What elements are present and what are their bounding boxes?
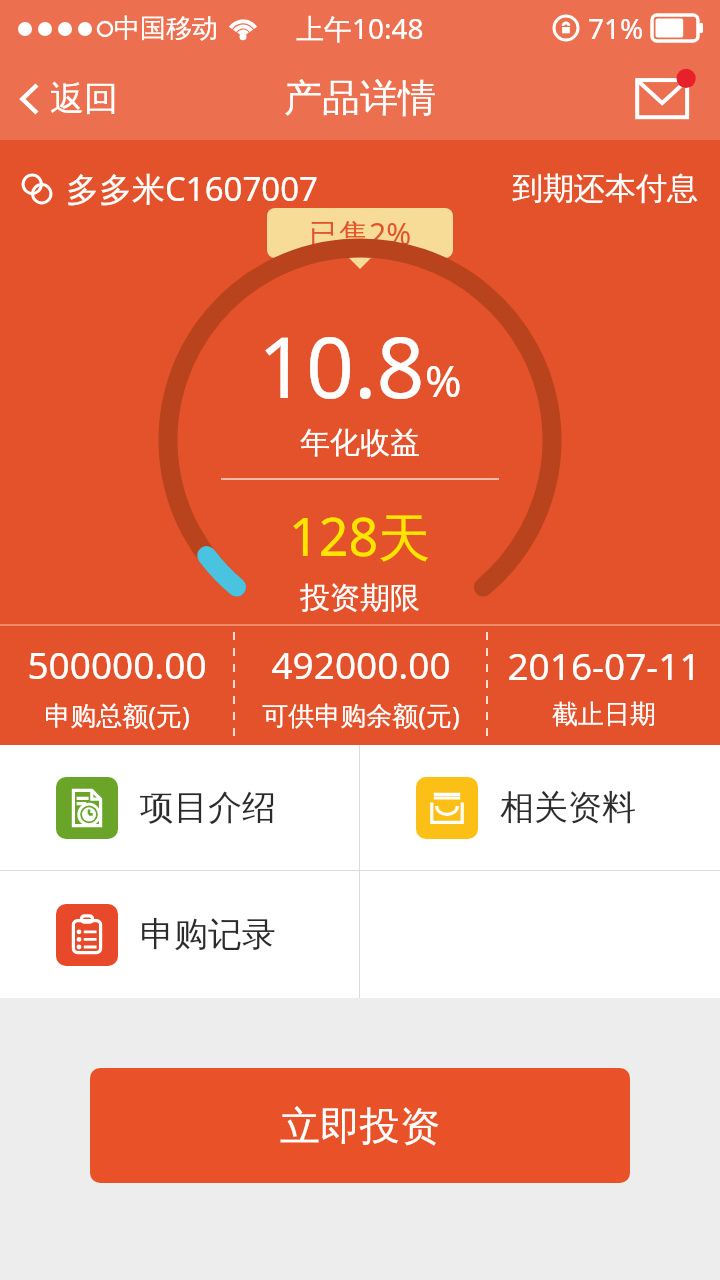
staticText: 128天 bbox=[289, 500, 431, 571]
button[interactable]: 申购记录 bbox=[0, 871, 359, 998]
staticText: 中国移动 bbox=[114, 12, 218, 45]
button[interactable]: 返回 bbox=[14, 71, 124, 126]
staticText: 申购记录 bbox=[140, 913, 276, 956]
staticText: 产品详情 bbox=[284, 74, 436, 122]
staticText: 71% bbox=[588, 9, 644, 47]
staticText: 相关资料 bbox=[500, 786, 636, 829]
staticText: 10.8 bbox=[258, 308, 425, 422]
staticText: % bbox=[425, 350, 462, 410]
button[interactable]: Messages bbox=[634, 66, 698, 130]
staticText: 到期还本付息 bbox=[512, 169, 698, 208]
staticText: 上午10:48 bbox=[296, 9, 424, 47]
button[interactable]: 相关资料 bbox=[360, 745, 720, 870]
staticText: 截止日期 bbox=[552, 698, 656, 731]
staticText: 立即投资 bbox=[280, 1101, 440, 1151]
staticText: 年化收益 bbox=[300, 424, 420, 462]
button[interactable]: 项目介绍 bbox=[0, 745, 359, 870]
staticText: 投资期限 bbox=[300, 579, 420, 617]
button[interactable]: 立即投资 bbox=[90, 1068, 630, 1183]
staticText: 项目介绍 bbox=[140, 786, 276, 829]
staticText: 申购总额(元) bbox=[44, 697, 190, 733]
staticText: 可供申购余额(元) bbox=[262, 697, 460, 733]
staticText: 返回 bbox=[50, 77, 118, 120]
staticText: 2016-07-11 bbox=[507, 640, 701, 690]
staticText: 492000.00 bbox=[271, 639, 451, 689]
staticText: 多多米C1607007 bbox=[66, 166, 318, 211]
staticText: 已售2% bbox=[309, 213, 412, 254]
staticText: 500000.00 bbox=[27, 639, 207, 689]
